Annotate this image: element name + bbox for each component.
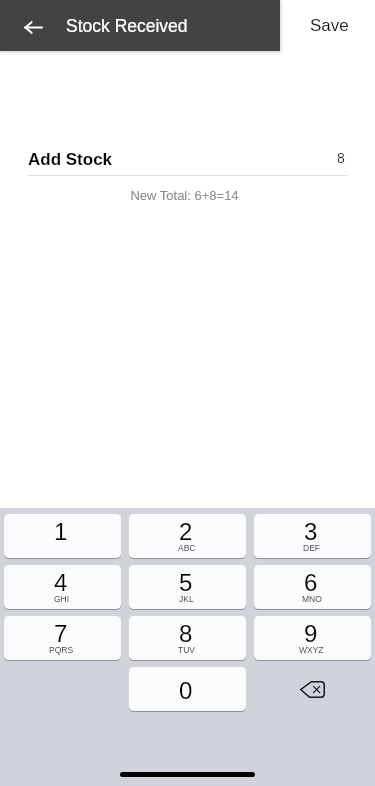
staticText: Add Stock	[28, 150, 113, 169]
button[interactable]: Backspace	[254, 667, 371, 712]
staticText: New Total: 6+8=14	[25, 188, 344, 203]
staticText: 0	[179, 677, 193, 704]
button[interactable]: 6	[254, 565, 371, 609]
staticText: ABC	[178, 543, 196, 552]
button[interactable]: 3	[254, 514, 371, 558]
button[interactable]: 8	[129, 616, 246, 660]
button[interactable]: 0	[129, 667, 246, 711]
button[interactable]: Back	[0, 0, 66, 51]
button[interactable]: 5	[129, 565, 246, 609]
button[interactable]: Save	[282, 0, 375, 51]
staticText: GHI	[54, 594, 70, 603]
staticText: MNO	[302, 594, 322, 603]
staticText: WXYZ	[299, 645, 324, 654]
staticText: 6	[304, 569, 318, 596]
button[interactable]: 9	[254, 616, 371, 660]
button[interactable]: 7	[4, 616, 121, 660]
staticText: 5	[179, 569, 193, 596]
staticText: PQRS	[49, 645, 74, 654]
staticText: 3	[304, 518, 318, 545]
staticText: 7	[54, 620, 68, 647]
staticText: 8	[337, 150, 345, 166]
staticText: TUV	[178, 645, 195, 654]
staticText: 4	[54, 569, 68, 596]
staticText: 1	[54, 518, 68, 545]
staticText: DEF	[303, 543, 320, 552]
staticText: 2	[179, 518, 193, 545]
staticText: 9	[304, 620, 318, 647]
staticText: Stock Received	[66, 16, 188, 36]
button[interactable]: 2	[129, 514, 246, 558]
button[interactable]: 1	[4, 514, 121, 558]
staticText: 8	[179, 620, 193, 647]
staticText: JKL	[179, 594, 194, 603]
staticText: Save	[310, 16, 349, 35]
button[interactable]: 4	[4, 565, 121, 609]
